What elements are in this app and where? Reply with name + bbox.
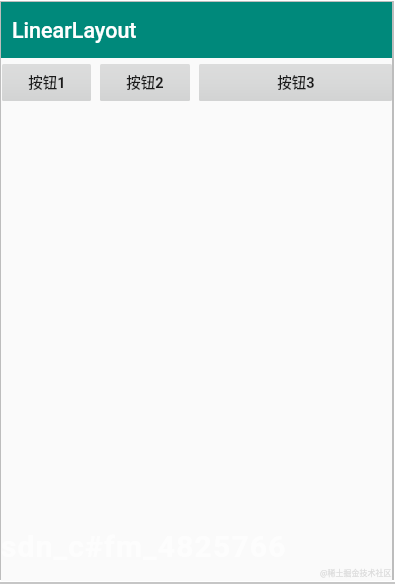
- staticText: 按钮3: [277, 71, 315, 92]
- button[interactable]: 按钮2: [100, 64, 190, 101]
- staticText: 按钮1: [28, 71, 66, 92]
- staticText: 按钮2: [126, 71, 164, 92]
- button[interactable]: 按钮3: [199, 64, 392, 101]
- staticText: LinearLayout: [12, 18, 137, 43]
- button[interactable]: 按钮1: [2, 64, 91, 101]
- staticText: @稀土掘金技术社区: [320, 567, 392, 579]
